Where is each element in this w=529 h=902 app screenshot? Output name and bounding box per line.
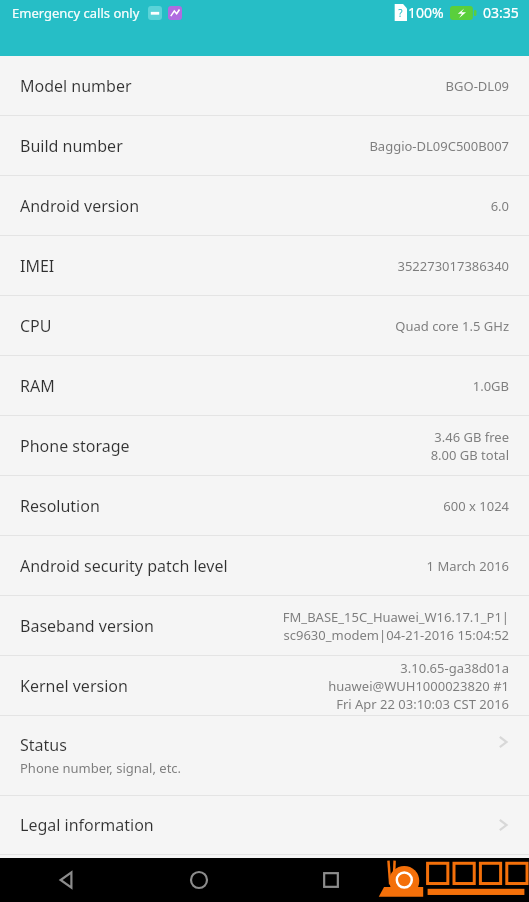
- staticText: Phone storage: [20, 435, 130, 457]
- staticText: Status: [20, 734, 67, 756]
- staticText: RAM: [20, 375, 55, 397]
- staticText: Android version: [20, 195, 140, 217]
- button[interactable]: Back: [0, 858, 133, 902]
- other: Status: [495, 734, 511, 750]
- staticText: Quad core 1.5 GHz: [395, 317, 509, 335]
- staticText: Resolution: [20, 495, 100, 517]
- button[interactable]: Phone storage: [0, 416, 529, 476]
- button[interactable]: IMEI: [0, 236, 529, 296]
- button[interactable]: Android security patch level: [0, 536, 529, 596]
- other: Legal information: [495, 817, 511, 833]
- staticText: Kernel version: [20, 675, 128, 697]
- staticText: 3.10.65-ga38d01a: [400, 659, 509, 677]
- staticText: Android security patch level: [20, 555, 228, 577]
- staticText: Legal information: [20, 814, 154, 836]
- button[interactable]: CPU: [0, 296, 529, 356]
- button[interactable]: Build number: [0, 116, 529, 176]
- staticText: huawei@WUH1000023820 #1: [328, 677, 509, 695]
- button[interactable]: Baseband version: [0, 596, 529, 656]
- staticText: Baggio-DL09C500B007: [369, 137, 509, 155]
- staticText: 3.46 GB free: [434, 428, 509, 446]
- staticText: Phone number, signal, etc.: [20, 759, 182, 777]
- staticText: Build number: [20, 135, 123, 157]
- staticText: CPU: [20, 315, 52, 337]
- staticText: IMEI: [20, 255, 55, 277]
- button[interactable]: Resolution: [0, 476, 529, 536]
- staticText: 600 x 1024: [443, 497, 509, 515]
- staticText: 8.00 GB total: [430, 446, 509, 464]
- button[interactable]: Status: [0, 716, 529, 796]
- button[interactable]: Kernel version: [0, 656, 529, 716]
- staticText: sc9630_modem|04-21-2016 15:04:52: [283, 626, 509, 644]
- staticText: 03:35: [483, 3, 519, 22]
- button[interactable]: Android version: [0, 176, 529, 236]
- staticText: Model number: [20, 75, 132, 97]
- button[interactable]: RAM: [0, 356, 529, 416]
- staticText: BGO-DL09: [445, 77, 509, 95]
- button[interactable]: Recents: [265, 858, 397, 902]
- staticText: Baseband version: [20, 615, 154, 637]
- staticText: FM_BASE_15C_Huawei_W16.17.1_P1|: [282, 608, 509, 626]
- staticText: 352273017386340: [397, 257, 509, 275]
- staticText: Fri Apr 22 03:10:03 CST 2016: [336, 695, 509, 713]
- staticText: ?: [398, 6, 403, 20]
- staticText: Emergency calls only: [12, 4, 140, 22]
- button[interactable]: Home: [133, 858, 265, 902]
- staticText: 1.0GB: [472, 377, 509, 395]
- staticText: 6.0: [490, 197, 509, 215]
- staticText: 100%: [408, 3, 444, 22]
- button[interactable]: Model number: [0, 56, 529, 116]
- staticText: 1 March 2016: [426, 557, 509, 575]
- button[interactable]: Legal information: [0, 796, 529, 855]
